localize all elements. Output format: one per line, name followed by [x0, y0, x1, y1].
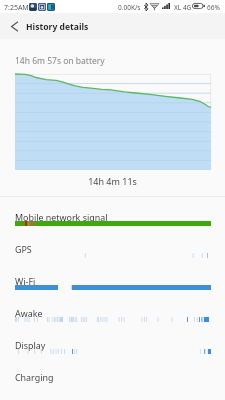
- staticText: 14h 4m 11s: [0, 175, 225, 187]
- staticText: 0.00K/s: [118, 3, 141, 12]
- staticText: GPS: [15, 243, 32, 255]
- staticText: Mobile network signal: [15, 211, 108, 223]
- staticText: Display: [15, 339, 46, 351]
- staticText: 14h 6m 57s on battery: [15, 55, 105, 67]
- staticText: Awake: [15, 307, 43, 319]
- staticText: 66%: [207, 3, 220, 12]
- staticText: Charging: [15, 371, 54, 383]
- button[interactable]: Back: [0, 14, 26, 39]
- staticText: 7:25AM: [4, 3, 29, 13]
- staticText: Wi-Fi: [15, 275, 36, 287]
- staticText: History details: [26, 21, 89, 33]
- button[interactable]: GPS: [0, 238, 225, 268]
- staticText: XL 4G: [174, 3, 192, 12]
- button[interactable]: Wi-Fi: [0, 270, 225, 300]
- button[interactable]: Mobile network signal: [0, 206, 225, 236]
- button[interactable]: Display: [0, 334, 225, 364]
- button[interactable]: Charging: [0, 366, 225, 396]
- button[interactable]: Awake: [0, 302, 225, 332]
